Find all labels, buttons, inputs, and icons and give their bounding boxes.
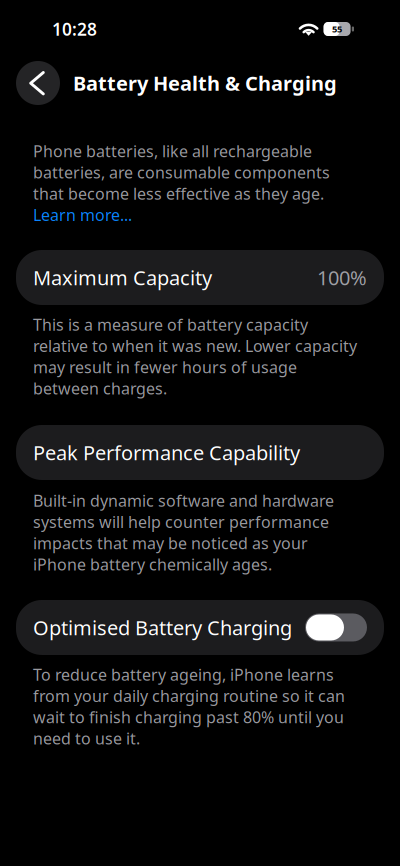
staticText: 55: [332, 23, 342, 35]
staticText: This is a measure of battery capacity re…: [33, 314, 357, 399]
staticText: 100%: [317, 264, 367, 291]
staticText: Learn more...: [33, 204, 132, 225]
button[interactable]: Optimised Battery Charging: [16, 600, 384, 655]
staticText: Peak Performance Capability: [33, 439, 300, 466]
staticText: Phone batteries, like all rechargeable b…: [33, 140, 330, 204]
staticText: 10:28: [52, 17, 97, 40]
staticText: Built-in dynamic software and hardware s…: [33, 490, 334, 575]
staticText: To reduce battery ageing, iPhone learns …: [33, 664, 345, 749]
button[interactable]: Peak Performance Capability: [16, 425, 384, 480]
button[interactable]: Back: [16, 61, 60, 105]
staticText: Optimised Battery Charging: [33, 614, 292, 641]
staticText: Battery Health & Charging: [73, 70, 337, 96]
button[interactable]: Maximum Capacity: [16, 250, 384, 305]
staticText: Maximum Capacity: [33, 264, 212, 291]
button[interactable]: Learn more...: [0, 204, 359, 225]
